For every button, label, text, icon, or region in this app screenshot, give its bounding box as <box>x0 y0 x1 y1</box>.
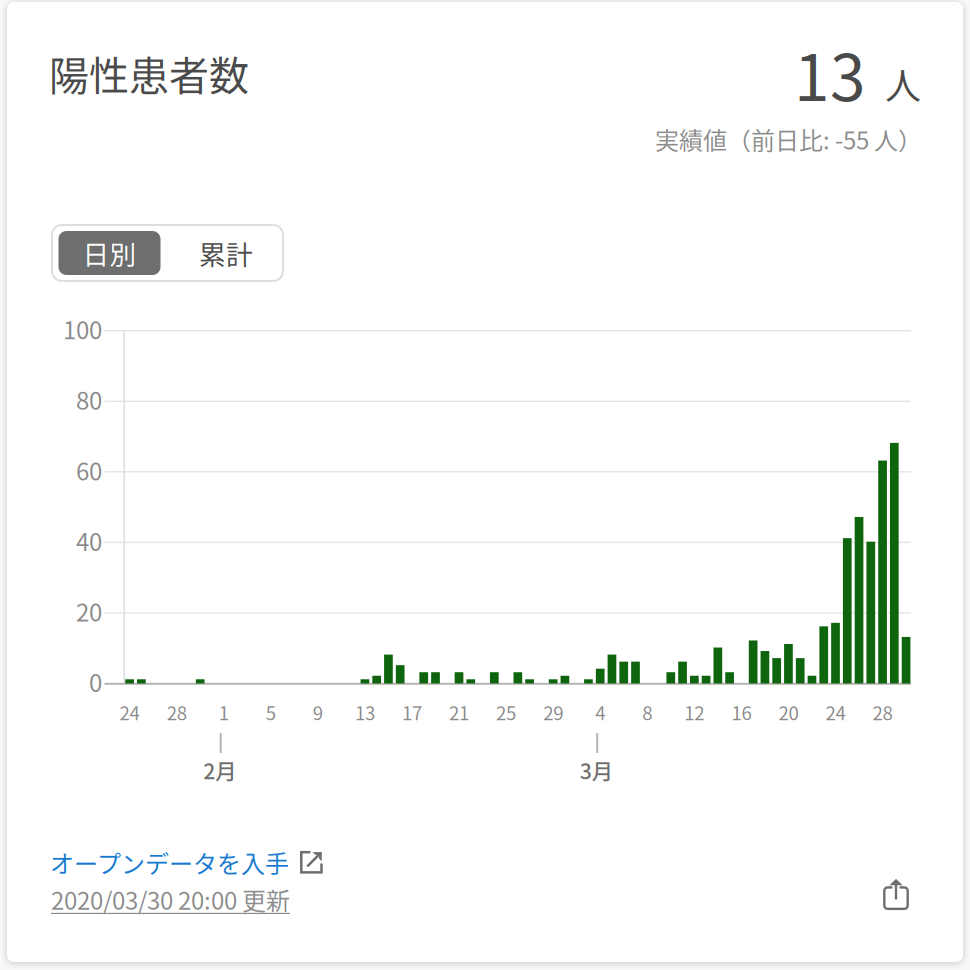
staticText: 日別 <box>82 234 136 272</box>
staticText: 17 <box>402 698 422 725</box>
staticText: 3月 <box>580 755 613 785</box>
staticText: 24 <box>825 698 845 725</box>
staticText: 29 <box>543 698 563 725</box>
staticText: 8 <box>642 698 652 725</box>
staticText: 21 <box>449 698 469 725</box>
staticText: オープンデータを入手 <box>50 845 289 880</box>
staticText: 2月 <box>203 755 236 785</box>
staticText: 100 <box>63 311 102 346</box>
staticText: 累計 <box>199 234 253 272</box>
button[interactable]: 日別 <box>58 231 160 275</box>
staticText: 9 <box>313 698 323 725</box>
button[interactable]: オープンデータを入手 <box>50 845 323 880</box>
staticText: 25 <box>496 698 516 725</box>
staticText: 2020/03/30 20:00 更新 <box>51 882 290 917</box>
button[interactable]: Share <box>883 878 909 910</box>
staticText: 実績値（前日比: -55 人） <box>655 122 922 156</box>
staticText: 0 <box>89 664 102 699</box>
staticText: 5 <box>266 698 276 725</box>
button[interactable]: 累計 <box>166 231 286 275</box>
staticText: 28 <box>167 698 187 725</box>
staticText: 24 <box>120 698 140 725</box>
staticText: 40 <box>76 523 102 558</box>
staticText: 人 <box>885 58 921 110</box>
staticText: 20 <box>76 594 102 628</box>
staticText: 陽性患者数 <box>49 44 249 102</box>
staticText: 16 <box>731 698 751 725</box>
staticText: 80 <box>76 382 102 417</box>
staticText: 1 <box>219 698 229 725</box>
staticText: 12 <box>684 698 704 725</box>
staticText: 4 <box>595 698 605 725</box>
staticText: 28 <box>873 698 893 725</box>
staticText: 20 <box>778 698 798 725</box>
staticText: 13 <box>355 698 375 725</box>
staticText: 13 <box>794 27 866 119</box>
staticText: 60 <box>76 452 102 487</box>
